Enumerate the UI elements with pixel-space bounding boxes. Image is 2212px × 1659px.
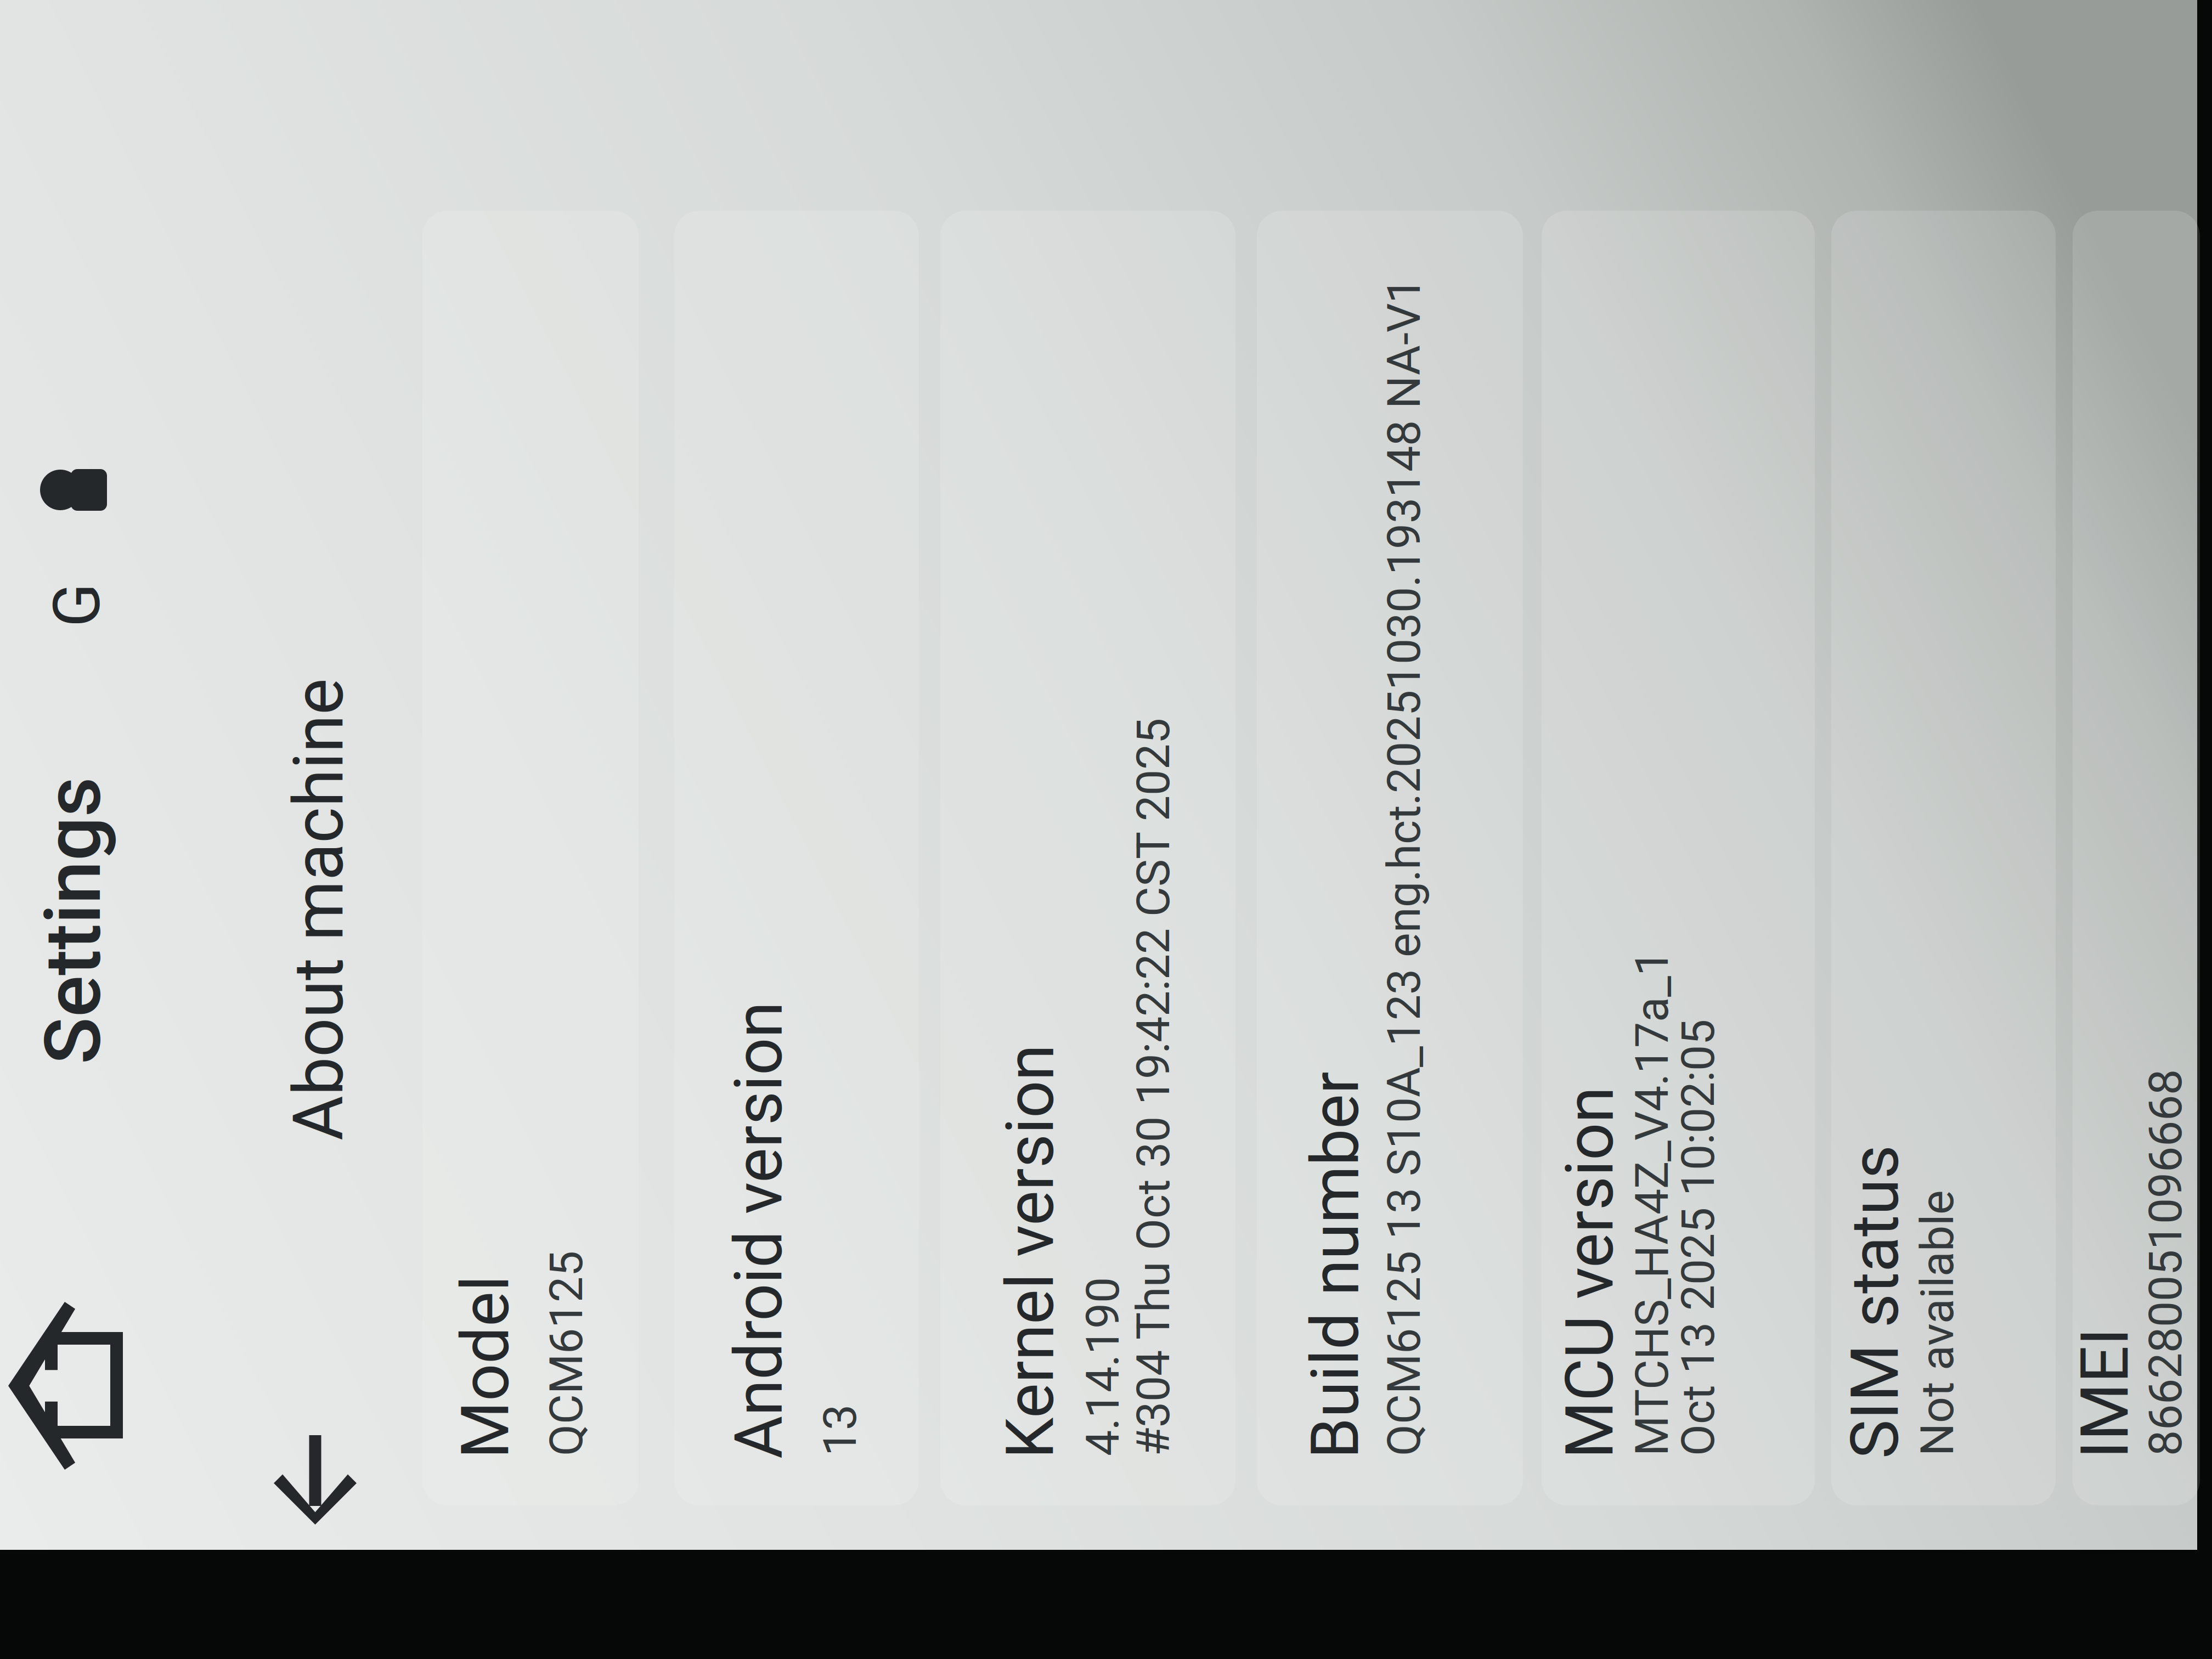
staticText: #304 Thu Oct 30 19:42:22 CST 2025 — [479, 850, 1217, 904]
button[interactable]: Kernel version — [430, 664, 1725, 959]
button[interactable]: MCU version — [430, 1265, 1725, 1538]
staticText: Build number — [477, 1020, 864, 1098]
staticText: About machine — [795, 2, 1257, 83]
button[interactable]: Model — [430, 146, 1725, 362]
staticText: MTCHS_HA4Z_V4.17a_1 — [479, 1348, 985, 1402]
staticText: MCU version — [477, 1275, 849, 1352]
staticText: Oct 13 2025 10:02:05 — [479, 1395, 916, 1449]
button[interactable]: Android version — [430, 398, 1725, 642]
button[interactable]: Build number — [430, 980, 1725, 1246]
staticText: QCM6125 13 S10A_123 eng.hct.20251030.193… — [479, 1101, 1658, 1154]
